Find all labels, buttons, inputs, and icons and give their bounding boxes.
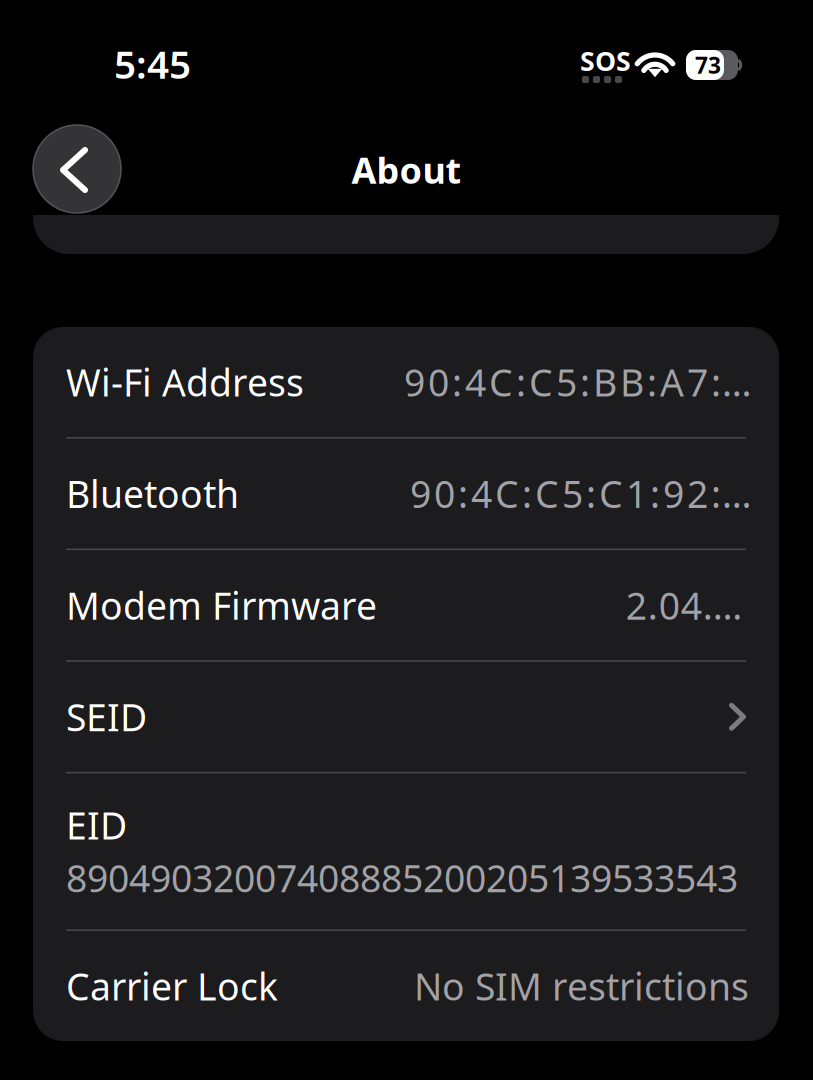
- staticText: EID: [66, 800, 127, 850]
- button[interactable]: Modem Firmware: [33, 550, 779, 660]
- staticText: Modem Firmware: [66, 580, 377, 630]
- button[interactable]: SEID: [33, 662, 779, 772]
- staticText: No SIM restrictions: [414, 961, 749, 1011]
- button[interactable]: Carrier Lock: [33, 931, 779, 1041]
- staticText: 5:45: [114, 38, 191, 89]
- staticText: 90:4C:C5:BB:A7:C6: [404, 357, 769, 407]
- staticText: SEID: [66, 692, 147, 742]
- staticText: Bluetooth: [66, 469, 239, 518]
- staticText: Carrier Lock: [66, 961, 278, 1011]
- staticText: 89049032007408885200205139533543: [66, 853, 738, 902]
- staticText: About: [351, 146, 461, 194]
- button[interactable]: Bluetooth: [33, 439, 779, 549]
- staticText: 73: [695, 50, 721, 80]
- button[interactable]: EID: [33, 773, 779, 929]
- staticText: 90:4C:C5:C1:92:A3: [410, 469, 769, 518]
- button[interactable]: Back: [33, 125, 121, 213]
- staticText: Wi-Fi Address: [66, 357, 304, 407]
- staticText: 2.04.06: [626, 580, 756, 630]
- button[interactable]: Wi-Fi Address: [33, 327, 779, 437]
- staticText: SOS: [580, 43, 631, 78]
